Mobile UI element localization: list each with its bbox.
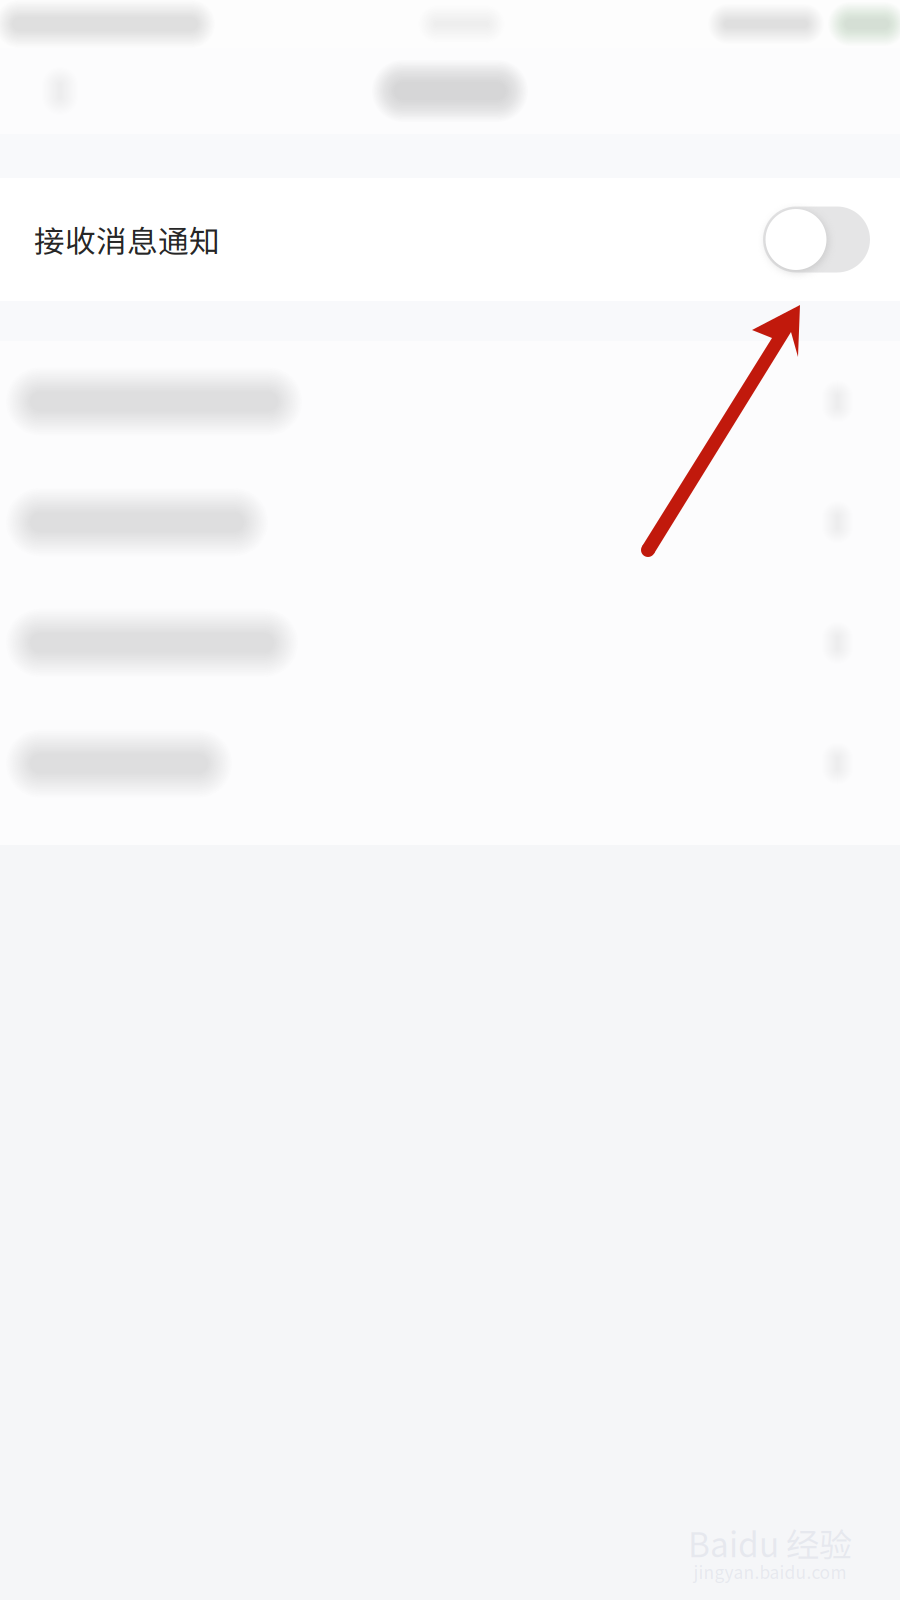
- button[interactable]: [0, 703, 900, 824]
- button[interactable]: 接收消息通知: [0, 178, 900, 301]
- staticText: Baidu 经验: [688, 1519, 852, 1567]
- staticText: 接收消息通知: [34, 217, 220, 262]
- button[interactable]: [0, 462, 900, 582]
- button[interactable]: Back: [0, 65, 80, 117]
- button[interactable]: [0, 582, 900, 703]
- button[interactable]: [0, 341, 900, 462]
- staticText: jingyan.baidu.com: [693, 1559, 846, 1584]
